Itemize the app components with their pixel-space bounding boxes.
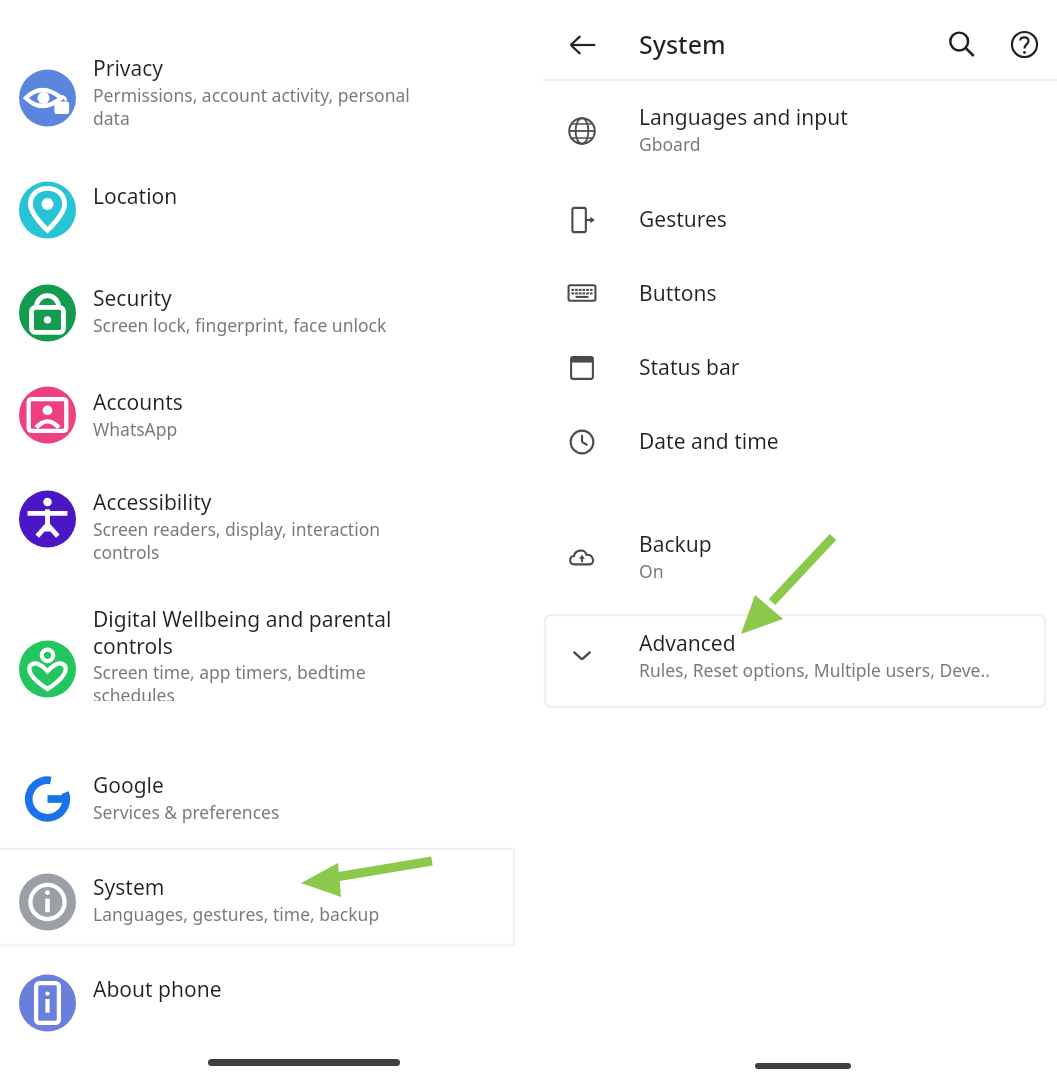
staticText: Accessibility [93, 488, 212, 517]
staticText: Services & preferences [93, 800, 280, 824]
button[interactable]: Help [998, 18, 1052, 72]
staticText: Digital Wellbeing and parental controls [93, 605, 392, 660]
button[interactable]: System [639, 27, 726, 61]
button[interactable]: System [0, 855, 512, 951]
staticText: Screen readers, display, interaction con… [93, 517, 381, 564]
button[interactable]: Date and time [543, 411, 1057, 473]
staticText: Permissions, account activity, personal … [93, 83, 410, 130]
button[interactable]: Accounts [0, 370, 512, 466]
staticText: Location [93, 182, 178, 211]
button[interactable]: Privacy [0, 36, 512, 132]
button[interactable]: Status bar [543, 337, 1057, 399]
button[interactable]: Accessibility [0, 470, 512, 566]
button[interactable]: Google [0, 753, 512, 849]
button[interactable]: Advanced [543, 613, 1057, 697]
button[interactable]: Gestures [543, 189, 1057, 251]
staticText: On [639, 559, 664, 583]
button[interactable]: Search [935, 18, 989, 72]
staticText: Google [93, 771, 164, 800]
staticText: Privacy [93, 54, 164, 83]
staticText: Languages and input [639, 103, 848, 132]
staticText: Date and time [639, 427, 779, 456]
button[interactable]: Buttons [543, 263, 1057, 325]
staticText: Screen time, app timers, bedtime schedul… [93, 660, 366, 701]
staticText: Rules, Reset options, Multiple users, De… [639, 658, 990, 682]
button[interactable]: Languages and input [543, 87, 1057, 171]
staticText: System [93, 873, 165, 902]
button[interactable]: Security [0, 266, 512, 362]
staticText: Buttons [639, 279, 717, 308]
staticText: WhatsApp [93, 417, 178, 441]
staticText: Backup [639, 530, 712, 559]
staticText: Languages, gestures, time, backup [93, 902, 380, 926]
staticText: Gestures [639, 205, 727, 234]
button[interactable]: About phone [0, 957, 512, 1029]
staticText: Status bar [639, 353, 740, 382]
button[interactable]: Location [0, 164, 512, 236]
button[interactable]: Back [556, 18, 610, 72]
staticText: Gboard [639, 132, 701, 156]
staticText: Advanced [639, 629, 736, 658]
staticText: Screen lock, fingerprint, face unlock [93, 313, 387, 337]
staticText: Security [93, 284, 172, 313]
staticText: About phone [93, 975, 222, 1004]
button[interactable]: Digital Wellbeing and parental controls [0, 587, 512, 683]
staticText: System [639, 27, 726, 61]
staticText: Accounts [93, 388, 183, 417]
button[interactable]: Backup [543, 514, 1057, 598]
